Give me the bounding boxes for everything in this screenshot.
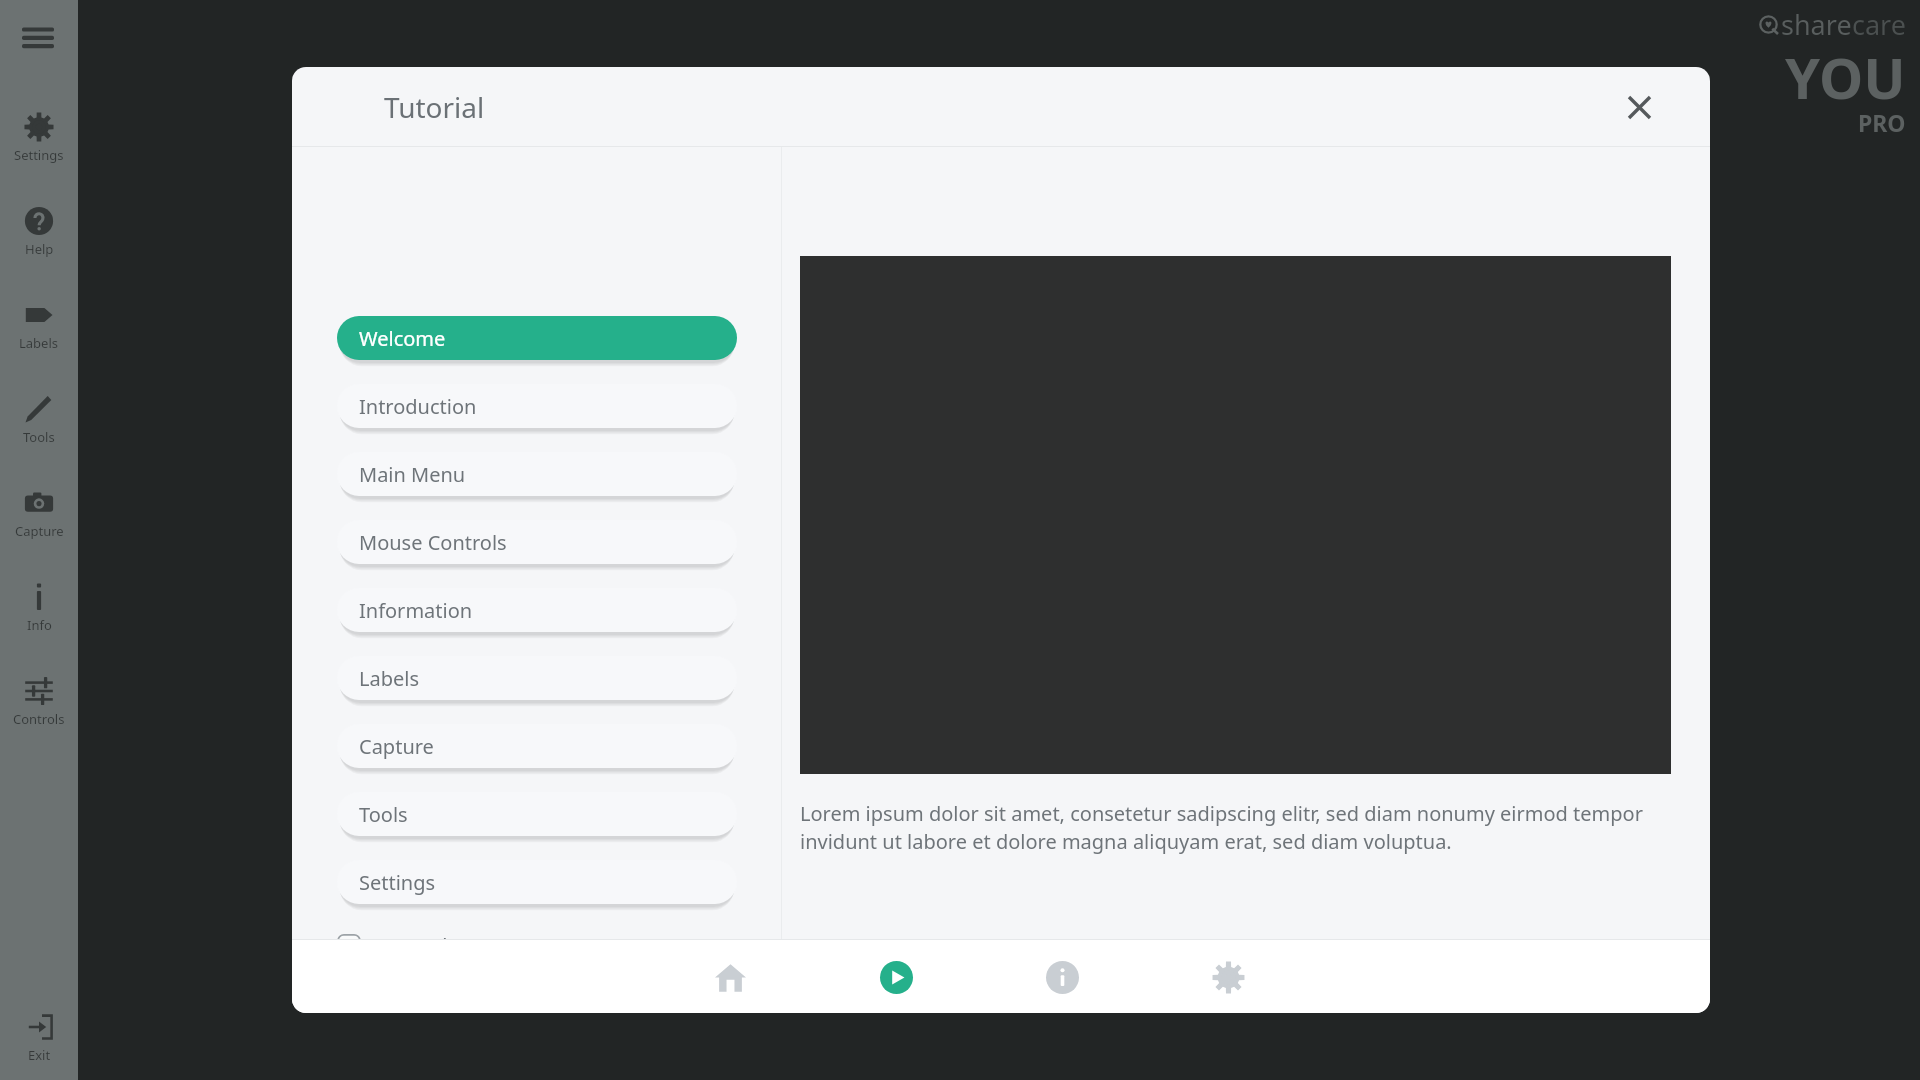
button[interactable]: Information: [1036, 951, 1088, 1003]
staticText: Introduction: [359, 393, 477, 420]
staticText: Welcome: [359, 325, 446, 352]
staticText: Labels: [359, 665, 420, 692]
button[interactable]: Capture: [337, 724, 737, 768]
staticText: Settings: [359, 869, 436, 896]
staticText: Capture: [359, 733, 434, 760]
button[interactable]: Help: [0, 206, 78, 300]
staticText: Lorem ipsum dolor sit amet, consetetur s…: [800, 800, 1675, 855]
staticText: PRO: [1858, 107, 1906, 138]
staticText: Don’t show on start: [378, 932, 561, 959]
button[interactable]: Close: [1616, 84, 1662, 130]
staticText: Tools: [23, 428, 55, 446]
staticText: Info: [27, 616, 52, 634]
staticText: Help: [25, 240, 54, 258]
button[interactable]: Settings: [0, 112, 78, 206]
staticText: Information: [359, 597, 473, 624]
button[interactable]: Info: [0, 582, 78, 676]
button[interactable]: Play: [870, 951, 922, 1003]
button[interactable]: Settings: [1202, 951, 1254, 1003]
staticText: Mouse Controls: [359, 529, 507, 556]
button[interactable]: Controls: [0, 676, 78, 770]
button[interactable]: Tools: [0, 394, 78, 488]
staticText: Tutorial: [384, 88, 485, 126]
button[interactable]: Labels: [0, 300, 78, 394]
staticText: share: [1781, 6, 1852, 43]
staticText: care: [1852, 6, 1906, 43]
button[interactable]: Information: [337, 588, 737, 632]
button[interactable]: Settings: [337, 860, 737, 904]
button[interactable]: Tools: [337, 792, 737, 836]
button[interactable]: Menu: [15, 14, 61, 60]
staticText: Labels: [19, 334, 59, 352]
button[interactable]: Exit: [0, 1012, 78, 1064]
button[interactable]: Main Menu: [337, 452, 737, 496]
button[interactable]: Home: [704, 951, 756, 1003]
staticText: Settings: [14, 146, 64, 164]
staticText: Tools: [359, 801, 408, 828]
button[interactable]: Don’t show on start: [337, 932, 561, 959]
staticText: Capture: [15, 522, 64, 540]
staticText: Exit: [28, 1046, 51, 1064]
staticText: Main Menu: [359, 461, 466, 488]
button[interactable]: Introduction: [337, 384, 737, 428]
button[interactable]: Welcome: [337, 316, 737, 360]
staticText: YOU: [1785, 39, 1906, 115]
staticText: Controls: [13, 710, 65, 728]
button[interactable]: Mouse Controls: [337, 520, 737, 564]
button[interactable]: Labels: [337, 656, 737, 700]
button[interactable]: Capture: [0, 488, 78, 582]
